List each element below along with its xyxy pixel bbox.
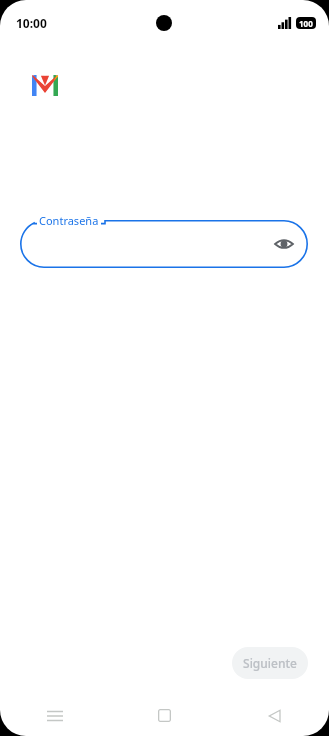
staticText: Contraseña (39, 213, 99, 228)
other: Gmail (32, 75, 58, 96)
button[interactable]: Recientes (0, 695, 109, 736)
button[interactable]: Inicio (109, 695, 219, 736)
button[interactable]: Mostrar contraseña (268, 228, 300, 260)
staticText: 10:00 (16, 15, 47, 31)
staticText: Siguiente (243, 655, 297, 671)
button[interactable]: Atrás (219, 695, 329, 736)
button[interactable]: Siguiente (232, 647, 308, 679)
button[interactable]: Mostrar contraseña (20, 220, 308, 268)
staticText: 100 (299, 18, 313, 29)
